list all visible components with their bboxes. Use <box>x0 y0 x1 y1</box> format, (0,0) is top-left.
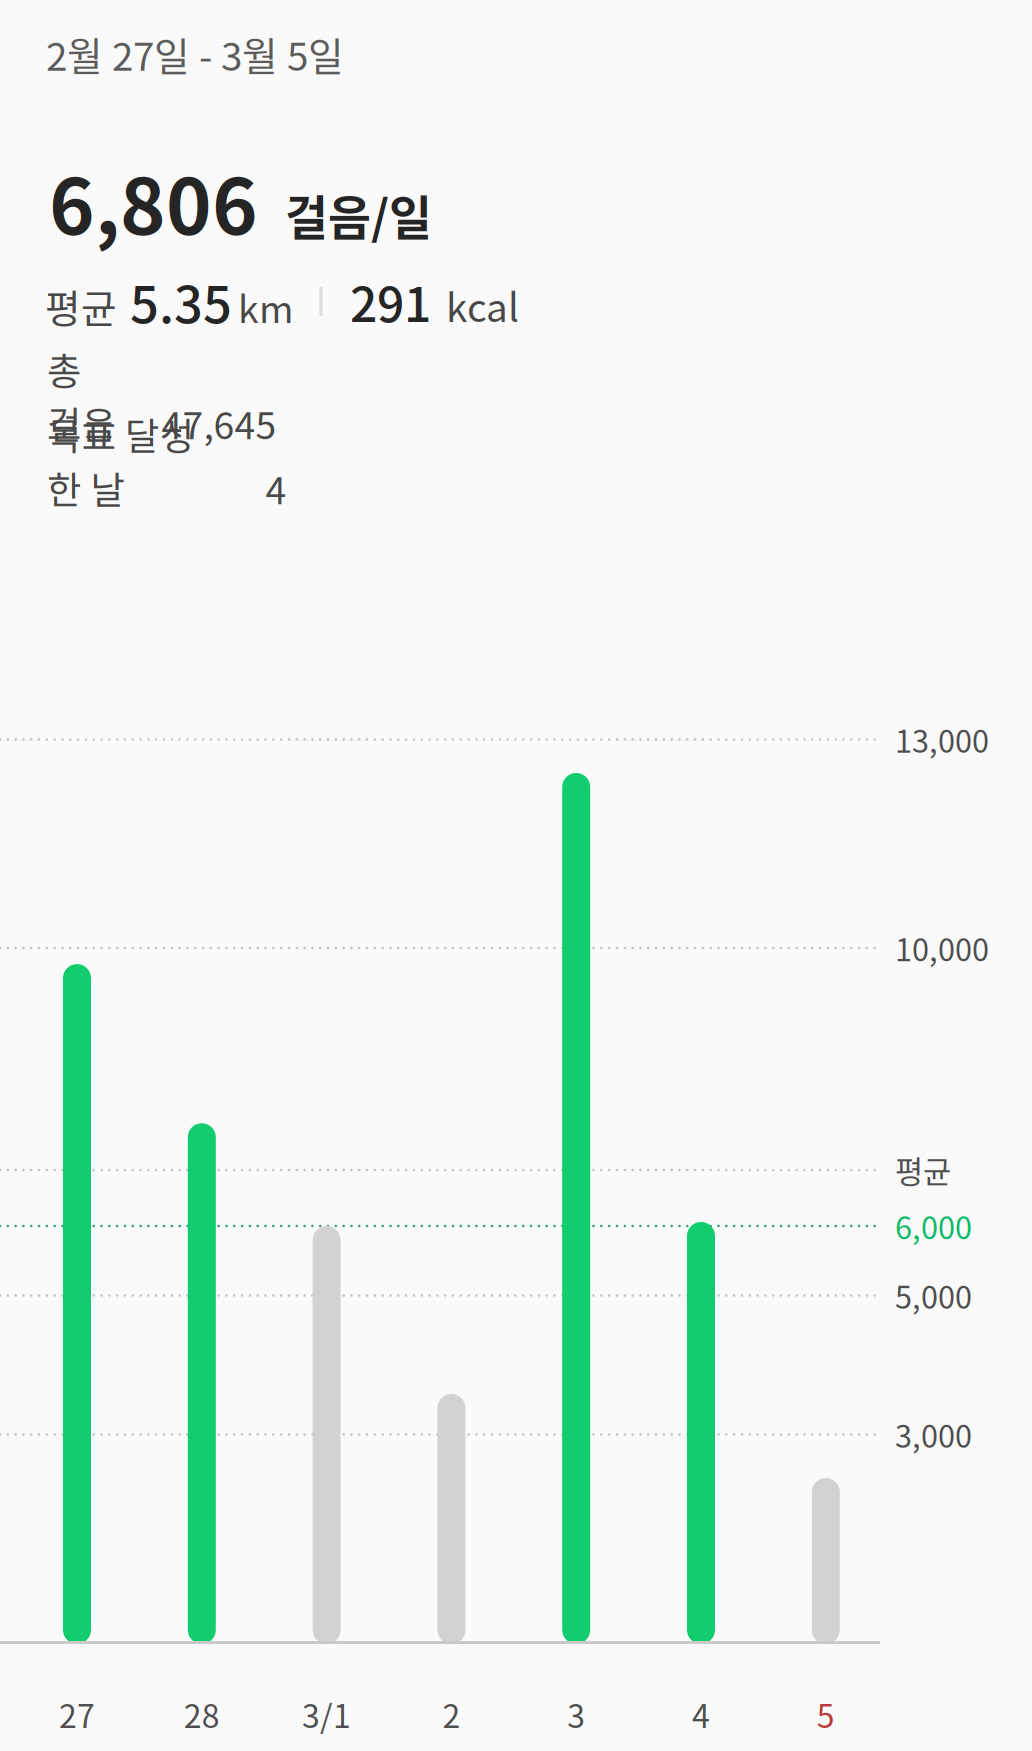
staticText: 291 <box>350 266 431 336</box>
staticText: 5 <box>817 1691 835 1737</box>
staticText: 총 걸음 <box>47 342 124 450</box>
staticText: 평균 <box>895 1148 951 1192</box>
staticText: 3,000 <box>895 1412 972 1457</box>
staticText: 28 <box>184 1691 220 1737</box>
staticText: 평균 <box>45 278 117 334</box>
staticText: 4 <box>265 461 286 515</box>
staticText: 13,000 <box>895 717 989 762</box>
staticText: 3/1 <box>302 1691 351 1737</box>
staticText: 27 <box>59 1691 95 1737</box>
staticText: 5,000 <box>895 1273 972 1318</box>
button[interactable]: 2월 27일 - 3월 5일 <box>46 26 344 82</box>
staticText: 10,000 <box>895 926 989 970</box>
staticText: 6,000 <box>895 1204 972 1248</box>
staticText: 걸음/일 <box>285 181 432 248</box>
staticText: 2월 27일 - 3월 5일 <box>46 26 344 82</box>
staticText: kcal <box>446 277 519 333</box>
staticText: 4 <box>692 1691 710 1737</box>
staticText: 목표 달성한 날 <box>47 407 228 515</box>
staticText: km <box>238 280 294 334</box>
staticText: 5.35 <box>130 264 232 338</box>
staticText: 47,645 <box>161 396 276 450</box>
staticText: 2 <box>442 1691 460 1737</box>
staticText: 3 <box>567 1691 585 1737</box>
staticText: 6,806 <box>49 145 258 257</box>
